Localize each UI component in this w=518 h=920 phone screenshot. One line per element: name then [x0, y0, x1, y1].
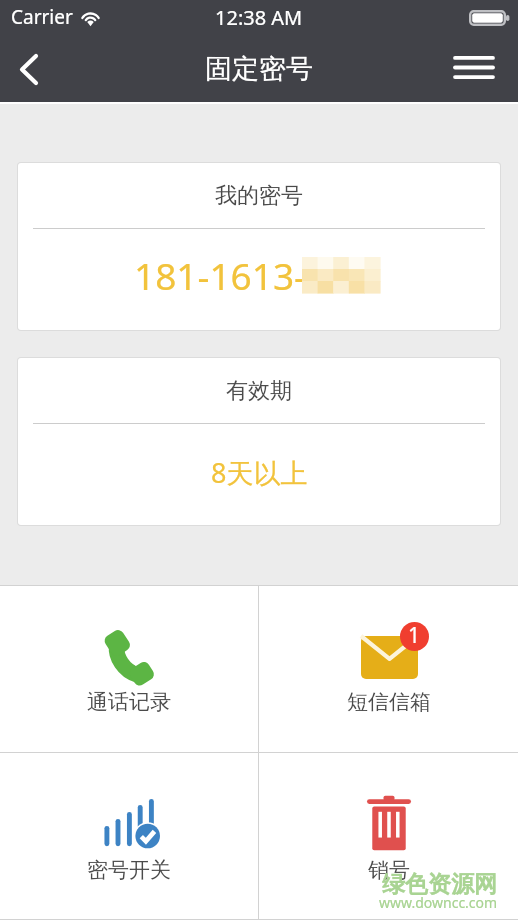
staticText: 绿色资源网: [382, 870, 497, 899]
staticText: 通话记录: [87, 689, 171, 715]
staticText: 181-1613-: [134, 250, 306, 300]
staticText: 8天以上: [211, 454, 308, 491]
button[interactable]: 通话记录: [0, 586, 258, 752]
staticText: 我的密号: [215, 182, 303, 210]
button[interactable]: 1: [259, 586, 518, 752]
staticText: 密号开关: [87, 857, 171, 883]
staticText: 有效期: [226, 377, 292, 405]
button[interactable]: 有效期: [18, 358, 500, 525]
button[interactable]: 销号: [259, 753, 518, 919]
button[interactable]: Back: [0, 36, 58, 102]
staticText: Carrier: [11, 4, 73, 30]
staticText: 销号: [368, 857, 410, 883]
staticText: 固定密号: [205, 52, 313, 86]
staticText: www.downcc.com: [379, 893, 498, 912]
button[interactable]: 密号开关: [0, 753, 258, 919]
button[interactable]: Menu: [453, 36, 518, 102]
button[interactable]: 我的密号: [18, 163, 500, 330]
staticText: 短信信箱: [347, 689, 431, 715]
staticText: 1: [408, 622, 421, 650]
staticText: 12:38 AM: [215, 4, 303, 31]
